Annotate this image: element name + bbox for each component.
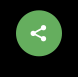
button[interactable]: Share [16,10,62,56]
